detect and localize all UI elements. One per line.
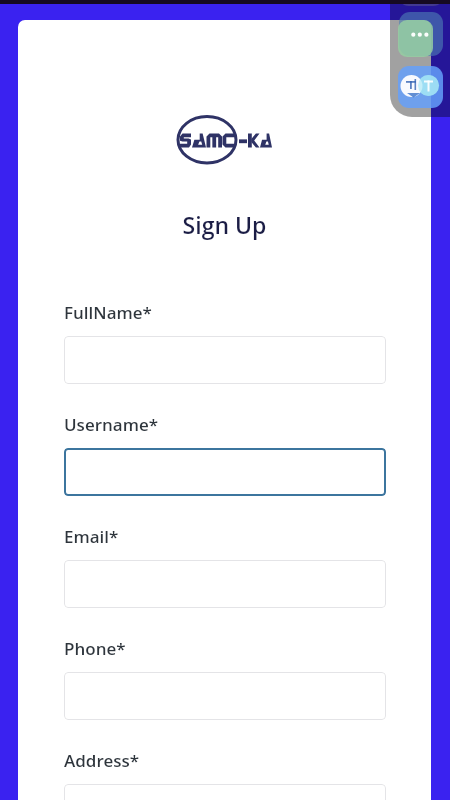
staticText: Phone* (64, 637, 126, 660)
staticText: Address* (64, 749, 140, 772)
button[interactable] (64, 672, 386, 720)
staticText: Email* (64, 525, 119, 548)
button[interactable] (64, 784, 386, 800)
button[interactable] (64, 336, 386, 384)
staticText: Sign Up (18, 209, 431, 240)
button[interactable]: More options (398, 20, 433, 57)
staticText: Username* (64, 413, 159, 436)
staticText: FullName* (64, 301, 152, 324)
button[interactable] (64, 448, 386, 496)
button[interactable] (64, 560, 386, 608)
button[interactable]: Translate (398, 66, 443, 108)
